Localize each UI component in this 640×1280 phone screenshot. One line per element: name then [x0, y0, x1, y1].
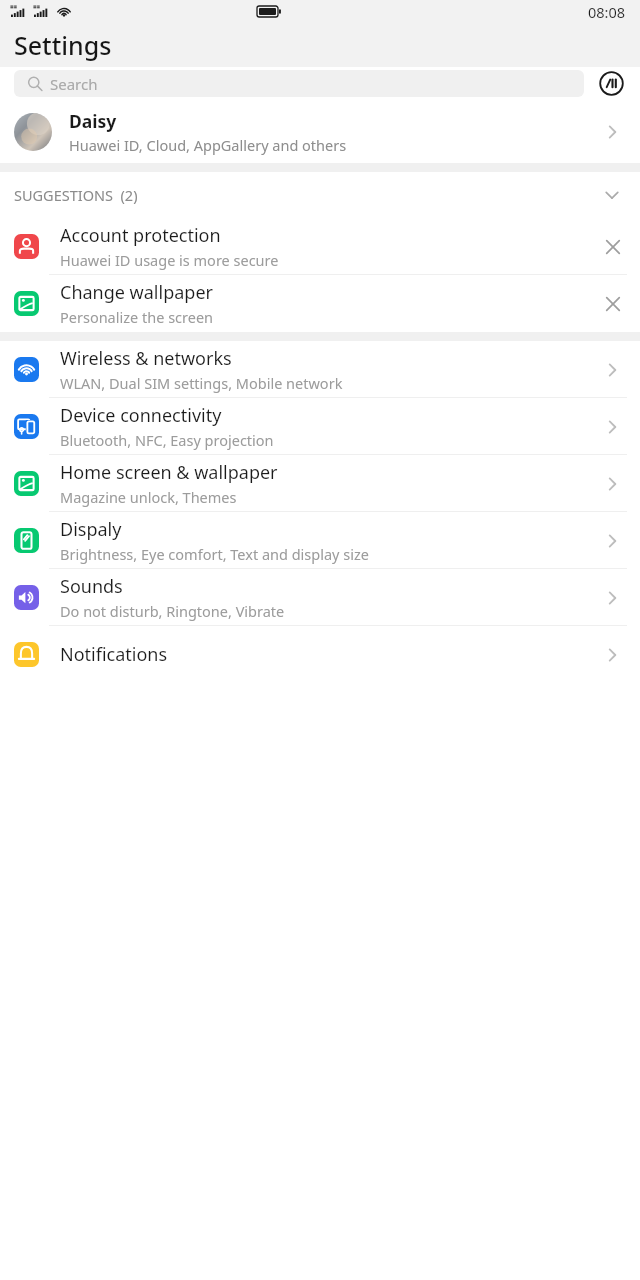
button[interactable]: Account protection: [0, 218, 640, 275]
button[interactable]: Change wallpaper: [0, 275, 640, 332]
staticText: 08:08: [588, 2, 626, 22]
staticText: SUGGESTIONS (2): [14, 185, 138, 205]
button[interactable]: Sounds: [0, 569, 640, 626]
staticText: WLAN, Dual SIM settings, Mobile network: [60, 373, 343, 393]
staticText: Home screen & wallpaper: [60, 460, 278, 485]
other: Collapse suggestions: [598, 181, 626, 209]
staticText: Daisy: [69, 109, 117, 133]
staticText: Brightness, Eye comfort, Text and displa…: [60, 544, 369, 564]
staticText: Huawei ID, Cloud, AppGallery and others: [69, 135, 347, 155]
staticText: Account protection: [60, 223, 221, 248]
button[interactable]: Device connectivity: [0, 398, 640, 455]
staticText: Sounds: [60, 574, 123, 599]
staticText: Huawei ID usage is more secure: [60, 250, 279, 270]
staticText: Do not disturb, Ringtone, Vibrate: [60, 601, 285, 621]
button[interactable]: Wireless & networks: [0, 341, 640, 398]
staticText: Notifications: [60, 642, 168, 667]
staticText: Search: [50, 74, 98, 94]
staticText: Device connectivity: [60, 403, 222, 428]
button[interactable]: Dispaly: [0, 512, 640, 569]
staticText: Bluetooth, NFC, Easy projection: [60, 430, 274, 450]
button[interactable]: Home screen & wallpaper: [0, 455, 640, 512]
staticText: Settings: [14, 28, 112, 62]
button[interactable]: Dismiss Change wallpaper: [600, 291, 626, 317]
staticText: Dispaly: [60, 517, 122, 542]
button[interactable]: SUGGESTIONS (2): [0, 172, 640, 218]
button[interactable]: Daisy: [0, 101, 640, 163]
button[interactable]: Scan code: [596, 68, 626, 98]
staticText: Wireless & networks: [60, 346, 232, 371]
button[interactable]: Search: [14, 70, 584, 97]
staticText: Magazine unlock, Themes: [60, 487, 237, 507]
button[interactable]: Dismiss Account protection: [600, 234, 626, 260]
button[interactable]: Notifications: [0, 626, 640, 683]
staticText: Personalize the screen: [60, 307, 214, 327]
staticText: Change wallpaper: [60, 280, 213, 305]
